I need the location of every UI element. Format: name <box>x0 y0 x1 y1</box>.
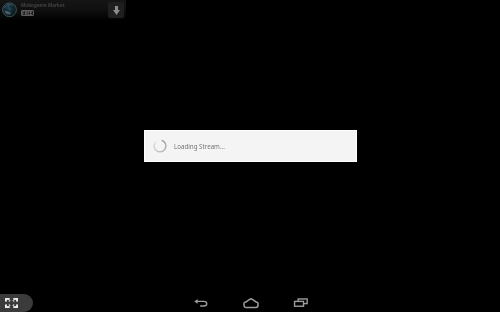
button[interactable]: Back <box>180 291 222 312</box>
staticText: Loading Stream... <box>174 142 225 150</box>
button[interactable]: Download <box>108 2 124 18</box>
button[interactable]: Home <box>230 291 272 312</box>
staticText: FREE <box>22 10 33 16</box>
button[interactable]: Expand <box>0 294 33 312</box>
staticText: Mobogenie Market <box>21 2 65 8</box>
button[interactable]: Loading Stream... <box>145 131 356 161</box>
button[interactable]: Recent apps <box>280 291 322 312</box>
button[interactable]: Mobogenie Market <box>0 0 126 20</box>
